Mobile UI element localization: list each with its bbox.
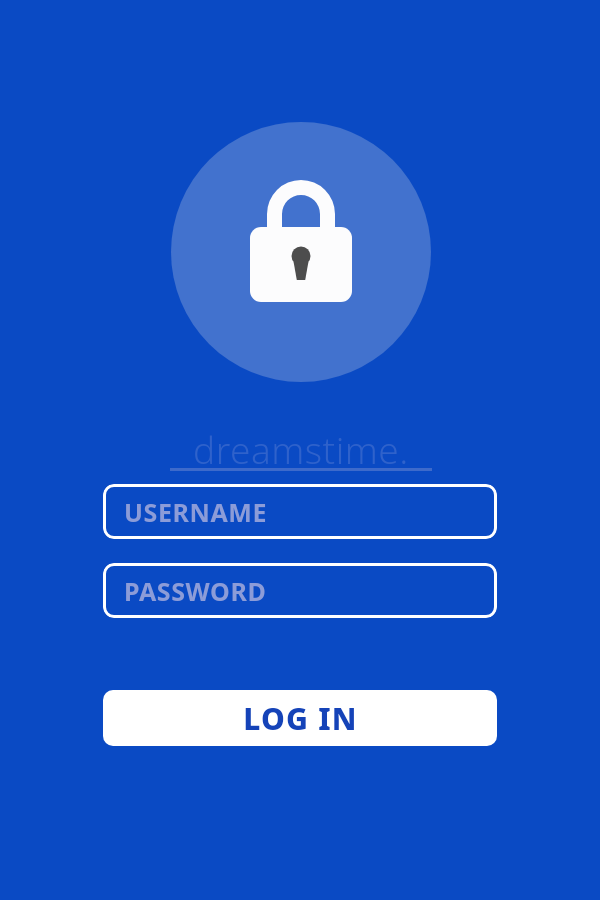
staticText: dreamstime. [193, 424, 409, 470]
staticText: USERNAME [124, 495, 268, 529]
staticText: PASSWORD [124, 574, 267, 608]
button[interactable]: PASSWORD [103, 563, 497, 618]
button[interactable]: USERNAME [103, 484, 497, 539]
staticText: LOG IN [243, 698, 358, 739]
button[interactable]: LOG IN [103, 690, 497, 746]
other: Secure login [171, 122, 431, 382]
